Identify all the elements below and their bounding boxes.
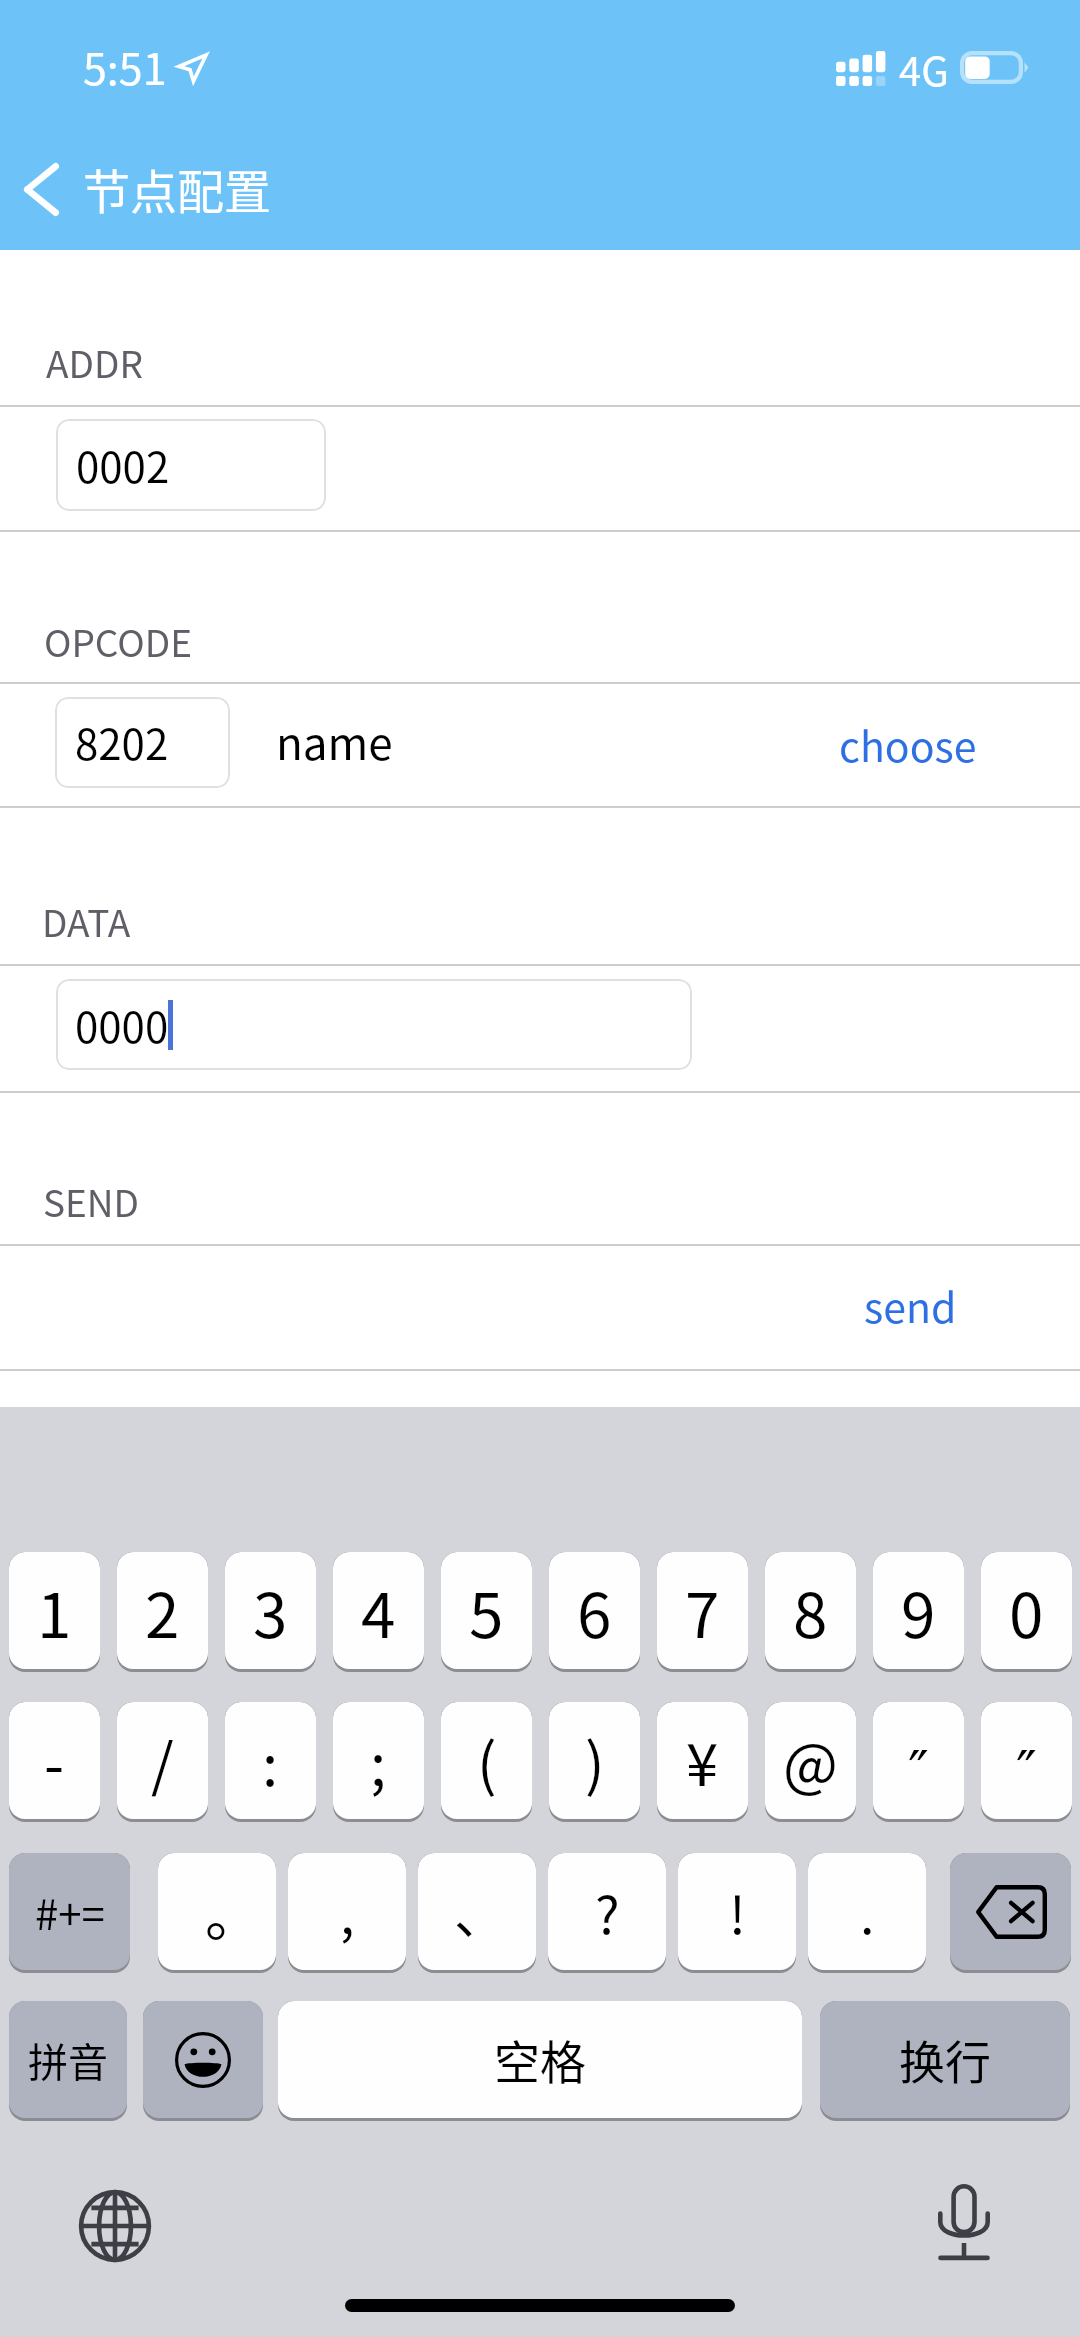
button[interactable]: ″ — [981, 1702, 1072, 1819]
staticText: 2 — [145, 1566, 180, 1656]
button[interactable]: 4 — [333, 1552, 424, 1669]
button[interactable]: 1 — [9, 1552, 100, 1669]
button[interactable]: @ — [765, 1702, 856, 1819]
button[interactable]: 。 — [158, 1853, 276, 1970]
staticText: @ — [783, 1719, 838, 1803]
staticText: OPCODE — [44, 614, 192, 668]
button[interactable]: ¥ — [657, 1702, 748, 1819]
staticText: ) — [585, 1719, 605, 1803]
button[interactable]: Data field — [56, 979, 692, 1070]
staticText: . — [860, 1874, 875, 1949]
staticText: SEND — [43, 1174, 140, 1228]
button[interactable]: ? — [548, 1853, 666, 1970]
staticText: ( — [477, 1719, 497, 1803]
staticText: 拼音 — [28, 2031, 108, 2089]
button[interactable]: 8 — [765, 1552, 856, 1669]
button[interactable]: / — [117, 1702, 208, 1819]
button[interactable]: Emoji keyboard — [143, 2001, 263, 2118]
staticText: 6 — [577, 1566, 612, 1656]
staticText: 0002 — [76, 434, 170, 495]
staticText: 8 — [793, 1566, 828, 1656]
staticText: ! — [729, 1874, 746, 1949]
staticText: 4 — [361, 1566, 396, 1656]
staticText: 。 — [205, 1871, 261, 1952]
staticText: 5:51 — [83, 35, 167, 97]
staticText: : — [262, 1719, 279, 1803]
button[interactable]: Dictation — [928, 2174, 1000, 2272]
button[interactable]: Change keyboard — [68, 2179, 162, 2273]
staticText: 7 — [685, 1566, 720, 1656]
button[interactable]: ( — [441, 1702, 532, 1819]
button[interactable]: 、 — [418, 1853, 536, 1970]
button[interactable]: , — [288, 1853, 406, 1970]
staticText: - — [44, 1719, 65, 1803]
staticText: choose — [839, 714, 977, 773]
button[interactable]: ; — [333, 1702, 424, 1819]
button[interactable]: 空格 — [278, 2001, 802, 2118]
staticText: 换行 — [899, 2026, 991, 2093]
button[interactable]: 0 — [981, 1552, 1072, 1669]
staticText: ″ — [908, 1738, 929, 1803]
button[interactable]: 9 — [873, 1552, 964, 1669]
button[interactable]: ) — [549, 1702, 640, 1819]
button[interactable]: 3 — [225, 1552, 316, 1669]
button[interactable]: : — [225, 1702, 316, 1819]
staticText: / — [151, 1719, 174, 1803]
staticText: 8202 — [75, 711, 169, 772]
staticText: 1 — [37, 1566, 72, 1656]
staticText: 空格 — [494, 2026, 586, 2093]
staticText: 0 — [1009, 1566, 1044, 1656]
button[interactable]: Address field — [56, 419, 326, 511]
button[interactable]: #+= — [9, 1853, 130, 1970]
button[interactable]: 6 — [549, 1552, 640, 1669]
button[interactable]: . — [808, 1853, 926, 1970]
staticText: ¥ — [686, 1719, 719, 1803]
staticText: , — [340, 1874, 355, 1949]
button[interactable]: 2 — [117, 1552, 208, 1669]
button[interactable]: Backspace — [950, 1853, 1071, 1970]
staticText: ? — [595, 1874, 620, 1949]
staticText: ; — [370, 1719, 387, 1803]
button[interactable]: Back — [0, 140, 300, 244]
staticText: 、 — [454, 1874, 507, 1949]
staticText: send — [864, 1275, 957, 1334]
staticText: 9 — [901, 1566, 936, 1656]
staticText: ADDR — [46, 335, 143, 389]
staticText: DATA — [42, 894, 131, 948]
button[interactable]: 5 — [441, 1552, 532, 1669]
button[interactable]: send — [846, 1261, 974, 1347]
staticText: 5 — [469, 1566, 504, 1656]
button[interactable]: 拼音 — [9, 2001, 127, 2118]
staticText: 3 — [253, 1566, 288, 1656]
staticText: name — [276, 709, 393, 773]
button[interactable]: - — [9, 1702, 100, 1819]
button[interactable]: 7 — [657, 1552, 748, 1669]
staticText: 0000 — [75, 994, 169, 1055]
button[interactable]: Opcode field — [55, 697, 230, 788]
button[interactable]: 换行 — [820, 2001, 1070, 2118]
button[interactable]: choose — [820, 700, 996, 786]
staticText: 4G — [899, 40, 949, 98]
staticText: 节点配置 — [83, 154, 271, 222]
staticText: ″ — [1016, 1738, 1037, 1803]
staticText: #+= — [35, 1881, 105, 1942]
button[interactable]: ! — [678, 1853, 796, 1970]
button[interactable]: ″ — [873, 1702, 964, 1819]
